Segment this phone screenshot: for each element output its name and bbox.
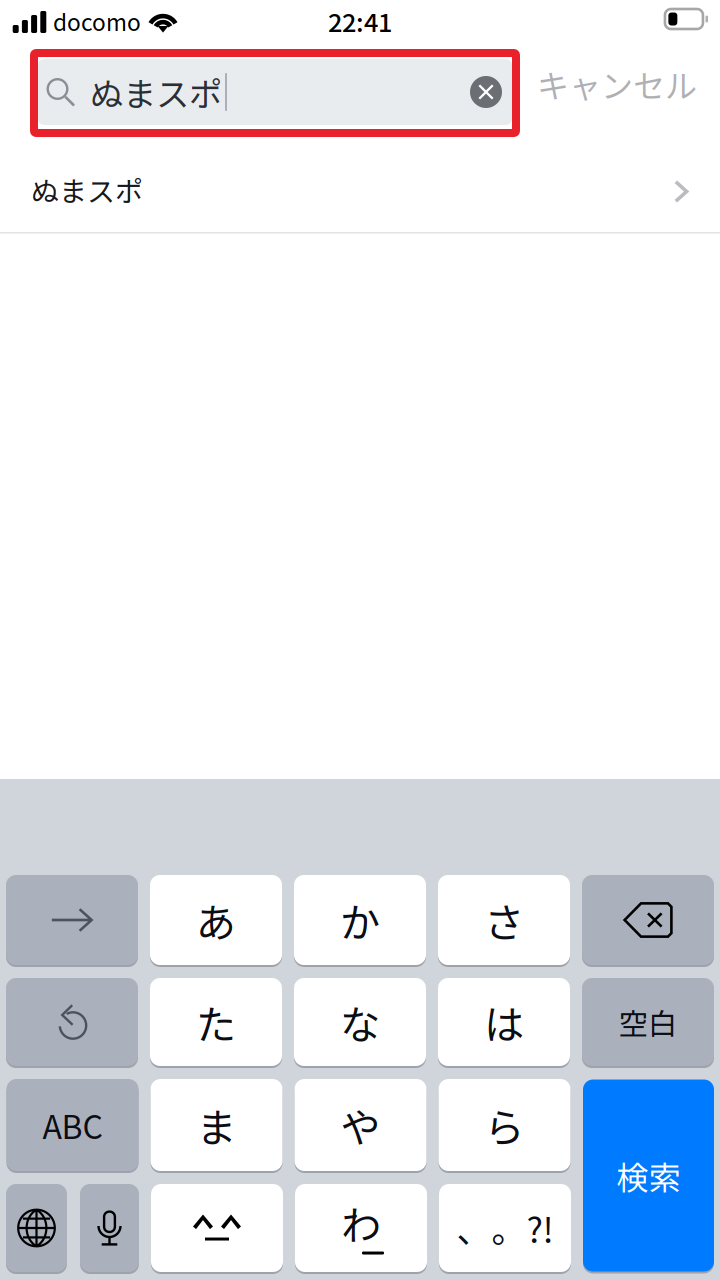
staticText: や xyxy=(340,1096,380,1154)
button[interactable]: ぬまスポ xyxy=(0,141,720,232)
button[interactable]: Next keyboard xyxy=(6,1184,67,1272)
staticText: さ xyxy=(484,891,524,949)
staticText: docomo xyxy=(53,5,141,37)
staticText: キャンセル xyxy=(537,61,697,107)
staticText: な xyxy=(340,993,380,1051)
button[interactable]: や xyxy=(294,1079,426,1171)
button[interactable]: は xyxy=(438,978,570,1066)
staticText: 22:41 xyxy=(328,3,392,39)
staticText: た xyxy=(196,993,236,1051)
button[interactable]: さ xyxy=(438,875,570,965)
staticText: 、。?! xyxy=(456,1203,553,1253)
button[interactable]: Delete xyxy=(582,875,714,965)
button[interactable]: ま xyxy=(150,1079,282,1171)
button[interactable]: 検索 xyxy=(583,1079,714,1271)
staticText: わ xyxy=(341,1194,381,1252)
button[interactable]: キャンセル xyxy=(537,40,707,128)
staticText: ぬまスポ xyxy=(31,169,143,210)
staticText: ら xyxy=(484,1096,524,1154)
staticText: 空白 xyxy=(619,1001,677,1043)
button[interactable]: Undo xyxy=(6,978,138,1066)
button[interactable]: あ xyxy=(150,875,282,965)
button[interactable]: 、。?! xyxy=(439,1184,571,1272)
button[interactable]: Dictation xyxy=(80,1184,139,1272)
staticText: か xyxy=(340,891,380,949)
button[interactable]: Emoticons xyxy=(151,1184,283,1272)
button[interactable]: わ xyxy=(295,1184,427,1272)
button[interactable]: ABC xyxy=(6,1079,138,1171)
staticText: は xyxy=(484,993,524,1051)
staticText: 検索 xyxy=(616,1152,680,1199)
staticText: あ xyxy=(196,891,236,949)
button[interactable]: Clear text xyxy=(462,64,510,120)
button[interactable]: ら xyxy=(438,1079,570,1171)
staticText: ま xyxy=(196,1096,236,1154)
button[interactable]: な xyxy=(294,978,426,1066)
button[interactable]: た xyxy=(150,978,282,1066)
button[interactable]: 空白 xyxy=(582,978,714,1066)
button[interactable]: か xyxy=(294,875,426,965)
staticText: ぬまスポ xyxy=(90,68,222,116)
staticText: ABC xyxy=(42,1102,102,1148)
button[interactable]: Next candidate xyxy=(6,875,138,965)
